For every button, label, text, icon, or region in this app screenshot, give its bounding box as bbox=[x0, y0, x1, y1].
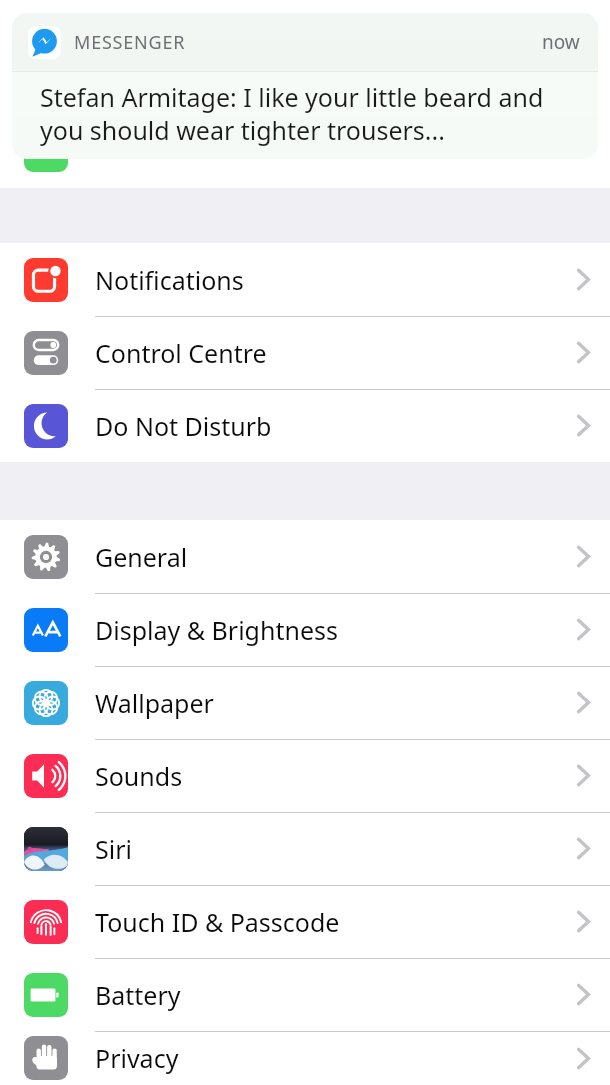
other: Messenger bbox=[28, 26, 61, 59]
button[interactable]: Do Not Disturb bbox=[0, 389, 610, 462]
button[interactable]: Privacy bbox=[0, 1031, 610, 1085]
button[interactable]: Battery bbox=[0, 958, 610, 1031]
staticText: Do Not Disturb bbox=[95, 409, 272, 443]
staticText: Siri bbox=[95, 832, 132, 866]
staticText: Notifications bbox=[95, 263, 244, 297]
staticText: Stefan Armitage: I like your little bear… bbox=[40, 80, 572, 147]
staticText: MESSENGER bbox=[74, 30, 186, 55]
staticText: General bbox=[95, 540, 188, 574]
button[interactable]: Touch ID & Passcode bbox=[0, 885, 610, 958]
staticText: now bbox=[542, 29, 580, 55]
staticText: Wallpaper bbox=[95, 686, 214, 720]
button[interactable]: Display & Brightness bbox=[0, 593, 610, 666]
staticText: Sounds bbox=[95, 759, 183, 793]
button[interactable]: Notifications bbox=[0, 243, 610, 316]
button[interactable]: Siri bbox=[0, 812, 610, 885]
staticText: Battery bbox=[95, 978, 181, 1012]
staticText: Display & Brightness bbox=[95, 613, 338, 647]
staticText: Privacy bbox=[95, 1041, 179, 1075]
button[interactable]: General bbox=[0, 520, 610, 593]
staticText: Touch ID & Passcode bbox=[95, 905, 340, 939]
staticText: Control Centre bbox=[95, 336, 267, 370]
button[interactable]: Sounds bbox=[0, 739, 610, 812]
button[interactable]: Messenger bbox=[12, 13, 598, 159]
button[interactable]: Control Centre bbox=[0, 316, 610, 389]
button[interactable]: Wallpaper bbox=[0, 666, 610, 739]
